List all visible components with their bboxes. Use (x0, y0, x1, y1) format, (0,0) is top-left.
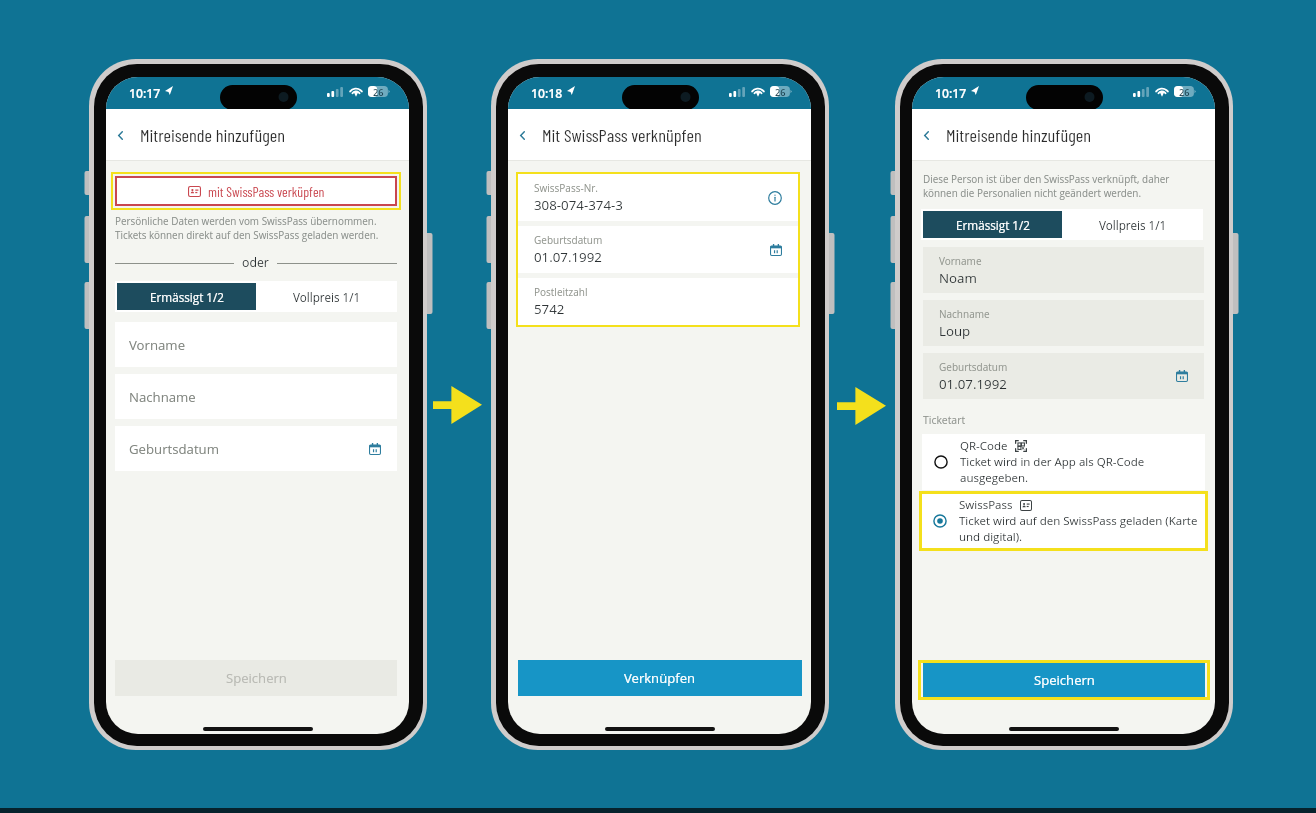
staticText: Ermässigt 1/2 (150, 289, 224, 305)
button[interactable]: Vorname (115, 322, 397, 367)
staticText: 5742 (534, 300, 565, 318)
staticText: 10:17 (129, 85, 161, 102)
staticText: Loup (939, 322, 971, 340)
staticText: Noam (939, 269, 977, 287)
button[interactable]: Vorname (923, 247, 1204, 293)
staticText: 01.07.1992 (939, 375, 1007, 393)
button[interactable]: Next step (433, 386, 482, 424)
button[interactable]: mit SwissPass verküpfen (115, 176, 397, 206)
staticText: Vorname (129, 336, 186, 354)
button[interactable]: SwissPass (921, 493, 1206, 549)
staticText: 01.07.1992 (534, 248, 602, 266)
staticText: mit SwissPass verküpfen (208, 183, 325, 200)
staticText: 10:18 (531, 85, 563, 102)
staticText: Nachname (129, 388, 196, 406)
staticText: Ticket wird auf den SwissPass geladen (K… (959, 513, 1198, 545)
staticText: 26 (373, 86, 384, 99)
staticText: Speichern (1034, 671, 1095, 689)
staticText: Diese Person ist über den SwissPass verk… (923, 172, 1170, 200)
staticText: Persönliche Daten werden vom SwissPass ü… (115, 214, 379, 242)
staticText: Postleitzahl (534, 285, 588, 299)
button[interactable]: QR-Code (922, 434, 1205, 490)
staticText: 10:17 (935, 85, 967, 102)
button[interactable]: Back (509, 122, 535, 148)
staticText: Geburtsdatum (129, 440, 219, 458)
staticText: Geburtsdatum (534, 233, 603, 247)
button[interactable]: SwissPass-Nr. (518, 174, 798, 221)
button[interactable]: Postleitzahl (518, 278, 798, 325)
button[interactable]: Vollpreis 1/1 (1062, 211, 1203, 238)
button[interactable]: Geburtsdatum (115, 426, 397, 471)
button[interactable]: Vollpreis 1/1 (256, 283, 397, 310)
staticText: Vorname (939, 254, 982, 268)
staticText: QR-Code (960, 438, 1008, 454)
button[interactable]: Ermässigt 1/2 (923, 211, 1062, 238)
staticText: Mitreisende hinzufügen (946, 124, 1091, 146)
button[interactable]: Verknüpfen (518, 660, 802, 696)
button[interactable]: Back (107, 122, 133, 148)
staticText: Vollpreis 1/1 (293, 289, 361, 305)
staticText: SwissPass (959, 497, 1013, 513)
staticText: Ticketart (923, 413, 966, 427)
staticText: Verknüpfen (624, 669, 696, 687)
staticText: 308-074-374-3 (534, 196, 623, 214)
button[interactable]: Nachname (923, 300, 1204, 346)
button[interactable]: Speichern (115, 660, 397, 696)
staticText: Mit SwissPass verknüpfen (542, 124, 702, 146)
staticText: Ticket wird in der App als QR-Code ausge… (960, 454, 1145, 486)
staticText: Ermässigt 1/2 (956, 217, 1030, 233)
staticText: oder (242, 254, 269, 271)
button[interactable]: Nachname (115, 374, 397, 419)
staticText: 26 (775, 86, 786, 99)
staticText: Nachname (939, 307, 990, 321)
staticText: SwissPass-Nr. (534, 181, 598, 195)
staticText: Speichern (226, 669, 287, 687)
staticText: Mitreisende hinzufügen (140, 124, 285, 146)
button[interactable]: Speichern (923, 662, 1205, 698)
button[interactable]: Back (913, 122, 939, 148)
button[interactable]: Geburtsdatum (923, 353, 1204, 399)
staticText: Vollpreis 1/1 (1099, 217, 1167, 233)
button[interactable]: Next step (837, 387, 886, 425)
button[interactable]: Ermässigt 1/2 (117, 283, 256, 310)
button[interactable]: Geburtsdatum (518, 226, 798, 273)
staticText: 26 (1179, 86, 1190, 99)
staticText: Geburtsdatum (939, 360, 1008, 374)
